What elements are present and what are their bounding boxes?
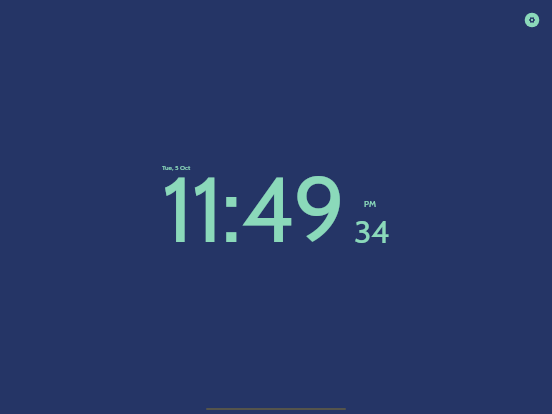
staticText: Tue, 5 Oct [162, 164, 191, 172]
staticText: 34 [354, 212, 389, 251]
staticText: PM [364, 199, 376, 209]
button[interactable]: Settings [514, 2, 550, 38]
staticText: 11:49 [162, 154, 346, 265]
